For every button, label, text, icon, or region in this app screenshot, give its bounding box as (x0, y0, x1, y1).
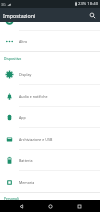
button[interactable]: Search (86, 9, 98, 21)
staticText: Personali (4, 196, 19, 200)
button[interactable]: Consumo dati (0, 9, 100, 31)
staticText: Display (19, 72, 32, 77)
staticText: Altro (19, 39, 28, 44)
staticText: 23% 18:40 (78, 1, 99, 7)
staticText: Impostazioni (3, 12, 36, 19)
button[interactable]: Batteria (0, 149, 100, 171)
staticText: Archiviazione e USB (19, 137, 53, 142)
button[interactable]: Recent apps (71, 200, 87, 212)
button[interactable]: App (0, 106, 100, 128)
button[interactable]: Back (13, 200, 29, 212)
staticText: Consumo dati (19, 18, 43, 23)
staticText: 3G (1, 2, 6, 7)
button[interactable]: Audio e notifiche (0, 85, 100, 107)
staticText: App (19, 115, 26, 120)
staticText: Dispositivo (4, 56, 22, 60)
staticText: Memoria (19, 180, 35, 185)
button[interactable]: Display (0, 63, 100, 85)
staticText: Batteria (19, 158, 33, 163)
button[interactable]: Home (42, 200, 58, 212)
staticText: Audio e notifiche (19, 94, 48, 99)
button[interactable]: Archiviazione e USB (0, 128, 100, 150)
button[interactable]: Altro (0, 30, 100, 52)
button[interactable]: Memoria (0, 171, 100, 193)
